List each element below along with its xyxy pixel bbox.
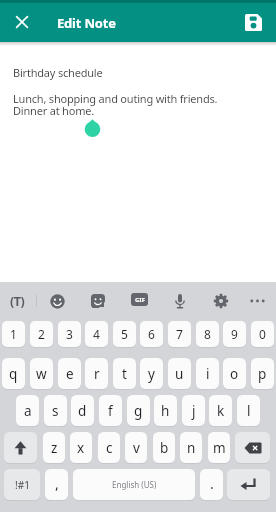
button[interactable]: c <box>98 432 120 463</box>
staticText: 7 <box>176 326 183 342</box>
staticText: b <box>160 439 169 457</box>
staticText: z <box>51 439 58 457</box>
staticText: a <box>24 402 32 420</box>
button[interactable] <box>247 291 267 311</box>
staticText: Edit Note <box>57 14 116 32</box>
staticText: 3 <box>66 326 73 342</box>
staticText: !#1 <box>15 478 30 492</box>
button[interactable] <box>88 291 108 311</box>
staticText: l <box>247 402 251 420</box>
button[interactable]: k <box>209 395 232 426</box>
button[interactable]: 5 <box>113 321 136 347</box>
button[interactable]: d <box>71 395 94 426</box>
staticText: Lunch, shopping and outing with friends. <box>13 91 218 106</box>
button[interactable]: y <box>140 358 163 389</box>
staticText: d <box>78 402 87 420</box>
button[interactable]: n <box>180 432 202 463</box>
button[interactable]: f <box>99 395 122 426</box>
button[interactable]: 2 <box>30 321 53 347</box>
staticText: w <box>36 365 47 383</box>
button[interactable]: h <box>154 395 177 426</box>
button[interactable]: s <box>44 395 67 426</box>
button[interactable]: a <box>16 395 39 426</box>
button[interactable] <box>236 5 270 39</box>
button[interactable]: 8 <box>196 321 219 347</box>
staticText: r <box>94 365 100 383</box>
staticText: c <box>106 439 113 457</box>
staticText: 0 <box>259 326 266 342</box>
button[interactable]: e <box>58 358 81 389</box>
staticText: 2 <box>38 326 45 342</box>
staticText: v <box>133 439 140 457</box>
button[interactable]: p <box>251 358 274 389</box>
button[interactable]: z <box>43 432 65 463</box>
button[interactable]: English (US) <box>73 469 195 500</box>
button[interactable]: r <box>85 358 108 389</box>
button[interactable]: q <box>2 358 25 389</box>
staticText: 6 <box>148 326 155 342</box>
staticText: English (US) <box>112 479 157 490</box>
button[interactable] <box>47 291 67 311</box>
staticText: p <box>258 365 267 383</box>
staticText: e <box>66 365 74 383</box>
button[interactable]: , <box>45 469 68 500</box>
button[interactable] <box>6 6 38 38</box>
button[interactable]: . <box>200 469 223 500</box>
button[interactable]: 1 <box>2 321 25 347</box>
button[interactable]: j <box>182 395 205 426</box>
button[interactable]: i <box>196 358 219 389</box>
staticText: x <box>77 439 85 457</box>
staticText: s <box>52 402 59 420</box>
button[interactable]: 6 <box>140 321 163 347</box>
staticText: f <box>108 402 113 420</box>
staticText: j <box>192 402 196 420</box>
button[interactable] <box>4 432 37 463</box>
staticText: y <box>148 365 155 383</box>
staticText: 5 <box>121 326 128 342</box>
button[interactable]: l <box>237 395 260 426</box>
button[interactable]: 3 <box>58 321 81 347</box>
button[interactable]: t <box>113 358 136 389</box>
button[interactable]: !#1 <box>4 469 40 500</box>
button[interactable]: o <box>223 358 246 389</box>
staticText: Birthday schedule <box>13 65 103 80</box>
staticText: 9 <box>231 326 238 342</box>
staticText: k <box>217 402 225 420</box>
staticText: i <box>206 365 210 383</box>
button[interactable]: 0 <box>251 321 274 347</box>
staticText: . <box>210 474 214 493</box>
button[interactable] <box>227 469 270 500</box>
button[interactable]: u <box>168 358 191 389</box>
staticText: , <box>55 474 59 493</box>
button[interactable]: g <box>127 395 150 426</box>
staticText: n <box>187 439 196 457</box>
button[interactable]: 4 <box>85 321 108 347</box>
staticText: 8 <box>204 326 211 342</box>
button[interactable]: 7 <box>168 321 191 347</box>
staticText: GIF <box>135 296 145 304</box>
staticText: o <box>230 365 239 383</box>
button[interactable]: GIF <box>131 293 148 306</box>
staticText: h <box>161 402 170 420</box>
button[interactable]: 9 <box>223 321 246 347</box>
staticText: m <box>213 439 226 457</box>
staticText: u <box>175 365 184 383</box>
button[interactable]: w <box>30 358 53 389</box>
button[interactable]: v <box>125 432 147 463</box>
button[interactable] <box>211 291 231 311</box>
staticText: g <box>134 402 143 420</box>
button[interactable] <box>171 291 189 311</box>
staticText: 1 <box>10 326 17 342</box>
button[interactable]: m <box>208 432 230 463</box>
staticText: q <box>9 365 18 383</box>
staticText: (T) <box>10 293 25 310</box>
staticText: t <box>122 365 127 383</box>
button[interactable]: b <box>153 432 175 463</box>
button[interactable] <box>235 432 270 463</box>
staticText: 4 <box>93 326 100 342</box>
button[interactable]: x <box>70 432 92 463</box>
staticText: Dinner at home. <box>13 103 94 118</box>
button[interactable]: (T) <box>2 290 32 312</box>
